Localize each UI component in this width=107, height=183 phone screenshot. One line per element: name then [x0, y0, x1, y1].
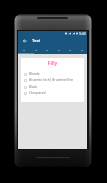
button[interactable]: Blonde — [24, 71, 84, 77]
staticText: Black — [29, 85, 37, 89]
button[interactable]: Brunette (rich), Brunette (thin differen… — [24, 77, 84, 83]
button[interactable] — [18, 47, 29, 53]
button[interactable] — [30, 47, 41, 53]
staticText: Blonde — [29, 72, 40, 76]
button[interactable] — [53, 47, 64, 53]
staticText: Test — [32, 38, 41, 44]
staticText: Chequered — [29, 91, 46, 95]
button[interactable] — [76, 47, 87, 53]
staticText: Brunette (rich), Brunette (thin differen… — [29, 78, 84, 82]
staticText: Filly — [21, 60, 84, 67]
staticText: 9:40 — [79, 31, 86, 36]
button[interactable]: Back — [20, 36, 29, 45]
button[interactable] — [64, 47, 75, 53]
button[interactable] — [41, 47, 52, 53]
button[interactable]: Chequered — [24, 90, 84, 96]
button[interactable]: Black — [24, 84, 84, 90]
